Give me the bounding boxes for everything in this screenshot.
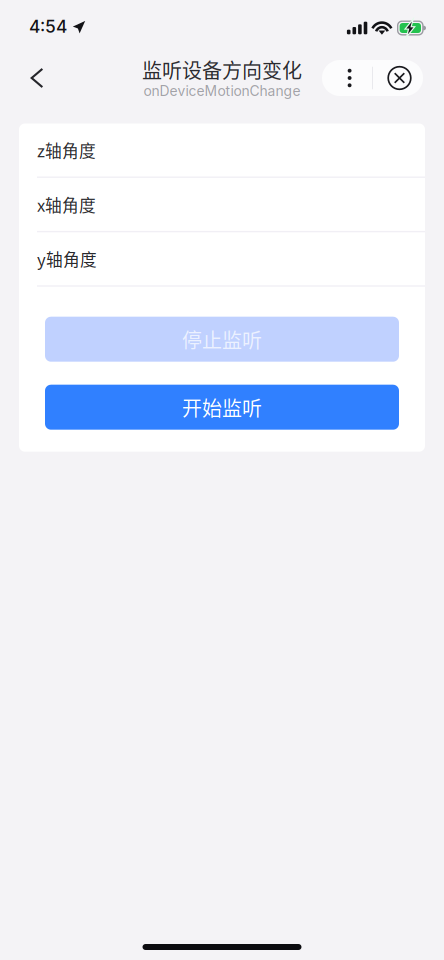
button[interactable]: y轴角度: [19, 232, 425, 285]
button[interactable]: Back: [17, 56, 57, 100]
staticText: z轴角度: [37, 138, 96, 162]
staticText: 监听设备方向变化: [142, 55, 302, 84]
staticText: 开始监听: [182, 393, 262, 422]
button[interactable]: More: [322, 60, 372, 96]
button[interactable]: 开始监听: [45, 385, 399, 430]
button[interactable]: 停止监听: [45, 317, 399, 362]
button[interactable]: Close: [373, 60, 423, 96]
button[interactable]: z轴角度: [19, 123, 425, 176]
staticText: 4:54: [29, 16, 67, 37]
staticText: y轴角度: [37, 247, 97, 271]
staticText: onDeviceMotionChange: [143, 83, 300, 99]
button[interactable]: x轴角度: [19, 178, 425, 231]
staticText: 停止监听: [182, 325, 262, 354]
staticText: x轴角度: [37, 192, 96, 216]
